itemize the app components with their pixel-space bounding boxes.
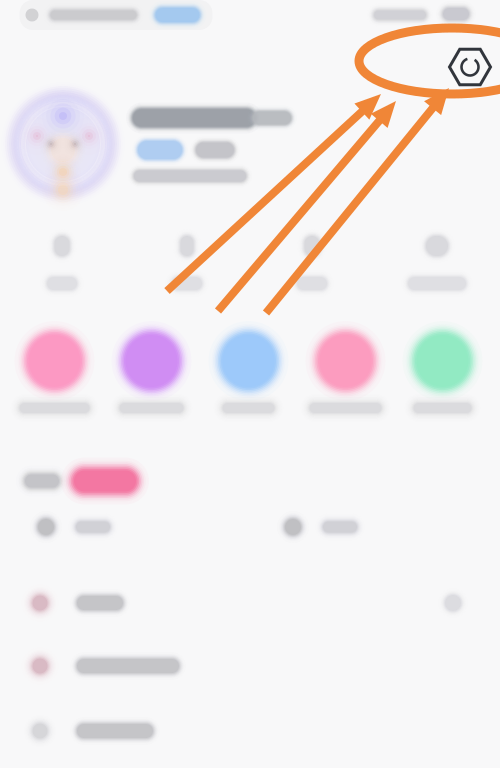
button[interactable]: Profile photo — [7, 88, 119, 200]
button[interactable]: Member status — [57, 456, 153, 506]
button[interactable] — [30, 512, 116, 542]
button[interactable] — [3, 227, 121, 299]
button[interactable] — [394, 331, 491, 447]
button[interactable] — [103, 331, 200, 447]
button[interactable] — [128, 227, 246, 299]
button[interactable] — [200, 331, 297, 447]
button[interactable] — [0, 700, 500, 762]
button[interactable] — [6, 331, 103, 447]
button[interactable] — [277, 512, 363, 542]
button[interactable] — [0, 572, 500, 634]
button[interactable]: Refresh — [0, 0, 500, 768]
button[interactable] — [0, 635, 500, 697]
button[interactable] — [378, 227, 496, 299]
button[interactable] — [253, 227, 371, 299]
button[interactable] — [297, 331, 394, 447]
button[interactable]: Account details — [130, 96, 330, 192]
